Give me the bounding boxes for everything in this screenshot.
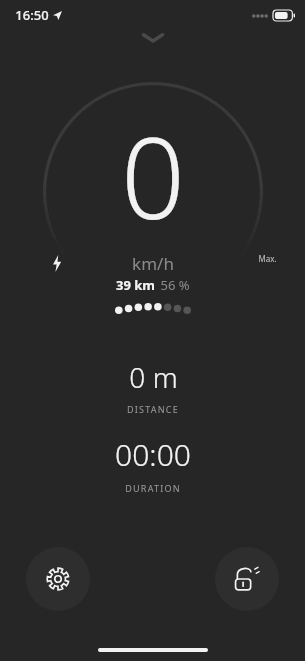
- other: Power: [52, 255, 62, 272]
- staticText: DISTANCE: [127, 403, 179, 415]
- staticText: 0: [121, 99, 185, 252]
- staticText: km/h: [132, 252, 174, 275]
- button[interactable]: Unlock: [215, 547, 279, 611]
- staticText: 0 m: [129, 358, 178, 396]
- staticText: 39 km: [116, 276, 155, 294]
- staticText: 00:00: [115, 434, 191, 475]
- staticText: DURATION: [125, 482, 181, 494]
- staticText: Max.: [258, 253, 277, 264]
- button[interactable]: Collapse: [138, 30, 168, 46]
- staticText: 16:50: [15, 6, 49, 24]
- staticText: 56 %: [160, 276, 190, 294]
- button[interactable]: Settings: [26, 547, 90, 611]
